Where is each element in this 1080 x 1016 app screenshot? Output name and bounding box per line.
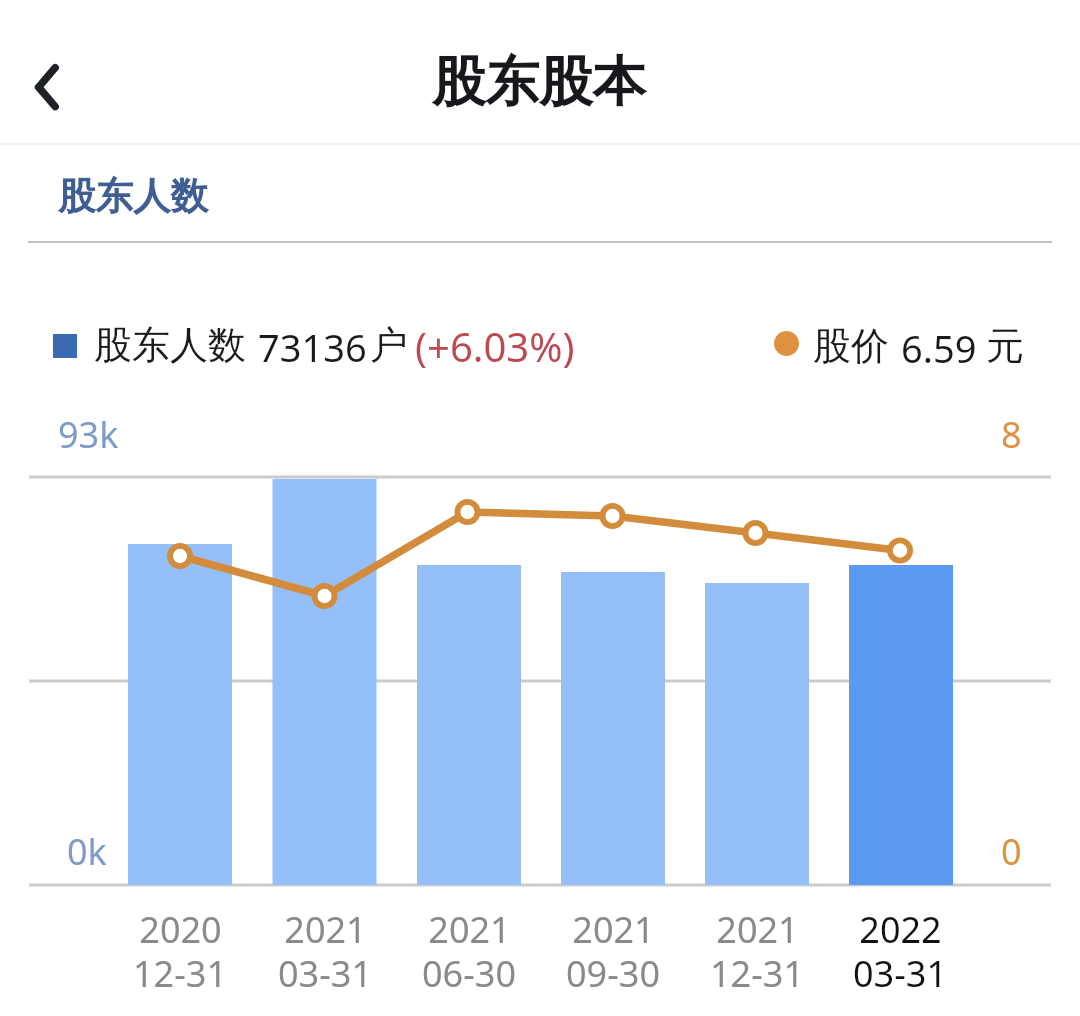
staticText: 03-31 (278, 949, 372, 998)
staticText: 2021 (572, 905, 655, 954)
staticText: 2021 (284, 905, 367, 954)
button[interactable]: 股价 (760, 316, 1040, 372)
staticText: 03-31 (853, 949, 947, 998)
staticText: 2021 (428, 905, 511, 954)
button[interactable]: 2022 (820, 905, 980, 1003)
staticText: 12-31 (133, 949, 227, 998)
staticText: 93k (58, 410, 119, 459)
staticText: 户 (370, 321, 408, 369)
staticText: 0 (1001, 827, 1022, 876)
staticText: 0k (67, 827, 107, 876)
button[interactable]: 股东人数 (40, 315, 600, 371)
staticText: 2022 (859, 905, 942, 954)
button[interactable]: Back (14, 48, 82, 126)
staticText: 股东人数 (58, 173, 208, 220)
staticText: 股东人数 (94, 321, 246, 369)
staticText: 8 (1001, 410, 1022, 459)
staticText: (+6.03%) (415, 319, 575, 373)
staticText: 2021 (716, 905, 799, 954)
staticText: 09-30 (566, 949, 660, 998)
button[interactable]: 2021 (245, 905, 405, 1003)
staticText: 06-30 (422, 949, 516, 998)
staticText: 12-31 (710, 949, 804, 998)
staticText: 6.59 (901, 322, 977, 374)
staticText: 元 (986, 322, 1024, 370)
button[interactable]: 2021 (677, 905, 837, 1003)
staticText: 股东股本 (432, 48, 646, 115)
button[interactable]: 2020 (100, 905, 260, 1003)
button[interactable]: 2021 (533, 905, 693, 1003)
staticText: 2020 (139, 905, 222, 954)
staticText: 73136 (258, 321, 367, 373)
button[interactable]: 2021 (389, 905, 549, 1003)
staticText: 股价 (813, 322, 889, 370)
